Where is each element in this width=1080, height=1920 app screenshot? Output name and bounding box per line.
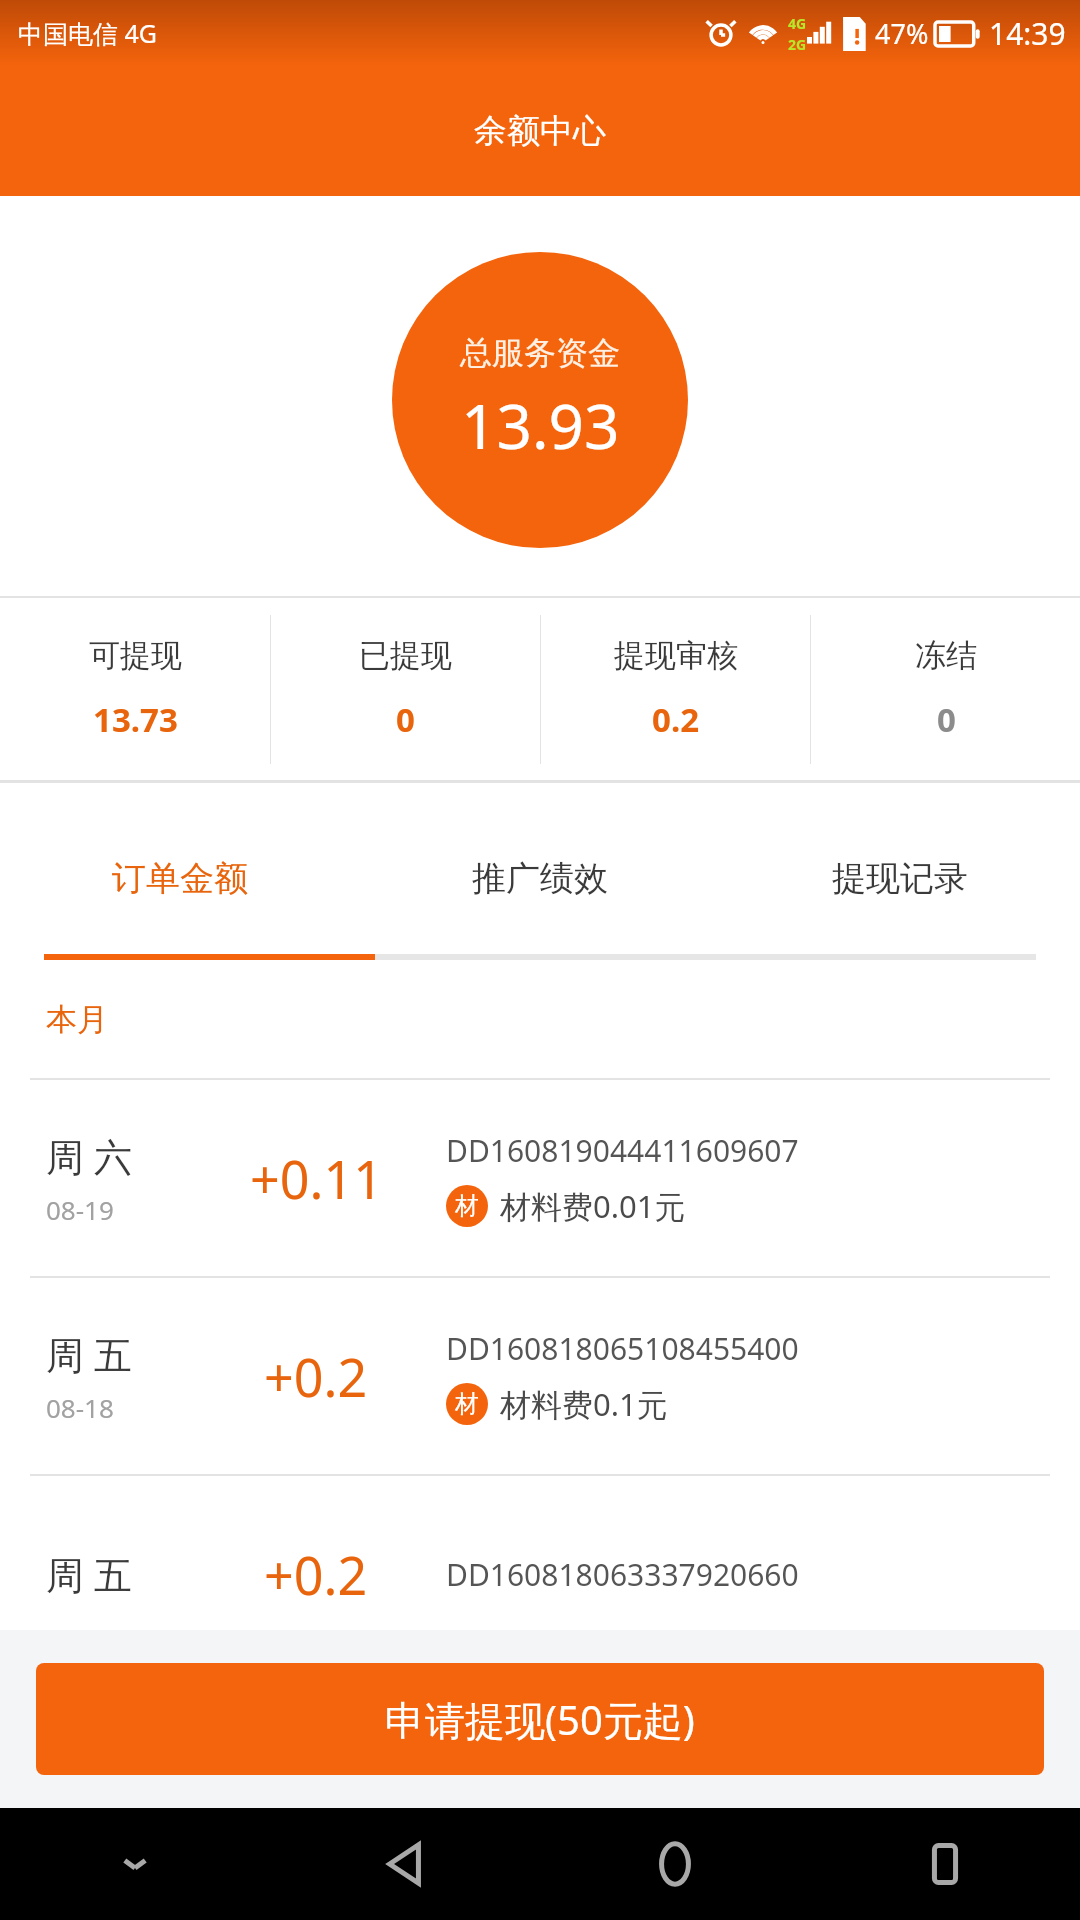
- staticText: DD160818063337920660: [446, 1554, 799, 1595]
- staticText: 周 六: [46, 1130, 132, 1182]
- staticText: 提现审核: [614, 636, 738, 675]
- staticText: 材料费0.1元: [500, 1383, 668, 1425]
- staticText: 推广绩效: [472, 857, 608, 900]
- staticText: 2G: [788, 35, 807, 54]
- button[interactable]: 周 五: [0, 1476, 1080, 1672]
- button[interactable]: 总服务资金: [392, 252, 688, 548]
- button[interactable]: 提现审核: [541, 598, 810, 780]
- button[interactable]: 提现记录: [720, 851, 1080, 906]
- button[interactable]: Recents: [810, 1808, 1080, 1920]
- button[interactable]: 订单金额: [0, 851, 360, 906]
- button[interactable]: Back: [270, 1808, 540, 1920]
- staticText: 13.73: [93, 697, 178, 742]
- staticText: 08-18: [46, 1390, 114, 1425]
- staticText: 中国电信 4G: [18, 16, 158, 50]
- staticText: 材: [455, 1191, 479, 1221]
- staticText: 周 五: [46, 1328, 132, 1380]
- staticText: +0.2: [264, 1341, 368, 1412]
- staticText: 冻结: [915, 636, 977, 675]
- button[interactable]: Home: [540, 1808, 810, 1920]
- staticText: 14:39: [989, 13, 1066, 54]
- staticText: 已提现: [359, 636, 452, 675]
- button[interactable]: 申请提现(50元起): [36, 1663, 1044, 1775]
- staticText: 0: [396, 697, 415, 742]
- staticText: 08-19: [46, 1192, 114, 1227]
- staticText: 余额中心: [474, 110, 606, 152]
- staticText: +0.2: [264, 1539, 368, 1610]
- staticText: 0.2: [652, 697, 700, 742]
- staticText: +0.11: [250, 1143, 383, 1214]
- button[interactable]: 可提现: [0, 598, 270, 780]
- button[interactable]: 周 五: [0, 1278, 1080, 1474]
- staticText: 材: [455, 1389, 479, 1419]
- button[interactable]: 冻结: [811, 598, 1080, 780]
- staticText: 申请提现(50元起): [385, 1692, 695, 1747]
- staticText: 47%: [875, 15, 929, 52]
- staticText: 本月: [46, 1000, 108, 1039]
- staticText: 材料费0.01元: [500, 1185, 686, 1227]
- staticText: DD160818065108455400: [446, 1328, 799, 1369]
- button[interactable]: Hide: [0, 1808, 270, 1920]
- staticText: 可提现: [89, 636, 182, 675]
- staticText: 提现记录: [832, 857, 968, 900]
- button[interactable]: 已提现: [271, 598, 540, 780]
- staticText: DD160819044411609607: [446, 1130, 799, 1171]
- staticText: 总服务资金: [460, 333, 620, 373]
- staticText: 13.93: [461, 383, 620, 467]
- button[interactable]: 推广绩效: [360, 851, 720, 906]
- staticText: 0: [937, 697, 956, 742]
- staticText: 订单金额: [112, 857, 248, 900]
- staticText: 4G: [788, 14, 807, 33]
- staticText: 周 五: [46, 1548, 132, 1600]
- button[interactable]: 周 六: [0, 1080, 1080, 1276]
